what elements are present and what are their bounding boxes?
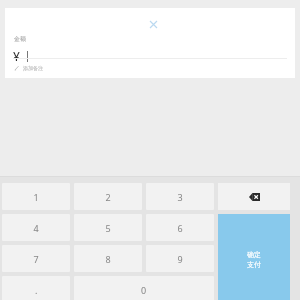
button[interactable]: 2 (74, 183, 142, 210)
staticText: 2 (105, 191, 111, 203)
staticText: 6 (177, 222, 183, 234)
button[interactable]: Backspace (218, 183, 290, 210)
button[interactable]: 3 (146, 183, 214, 210)
button[interactable]: 9 (146, 245, 214, 272)
button[interactable]: 1 (2, 183, 70, 210)
staticText: 7 (33, 253, 39, 265)
staticText: 5 (105, 222, 111, 234)
staticText: 8 (105, 253, 111, 265)
button[interactable]: 6 (146, 214, 214, 241)
staticText: 支付 (247, 260, 261, 269)
staticText: 金额 (14, 35, 26, 43)
staticText: 4 (33, 222, 39, 234)
staticText: 1 (33, 191, 39, 203)
button[interactable]: 8 (74, 245, 142, 272)
button[interactable]: 7 (2, 245, 70, 272)
staticText: 3 (177, 191, 183, 203)
staticText: 确定 (247, 250, 261, 259)
staticText: 0 (141, 284, 147, 296)
staticText: . (35, 284, 38, 296)
staticText: ¥ (13, 48, 20, 64)
button[interactable]: Close (146, 17, 160, 31)
staticText: 9 (177, 253, 183, 265)
button[interactable]: 4 (2, 214, 70, 241)
button[interactable]: 确定 (218, 214, 290, 300)
staticText: 添加备注 (23, 65, 43, 71)
button[interactable]: 添加备注 (11, 63, 46, 73)
button[interactable]: 5 (74, 214, 142, 241)
button[interactable]: 0 (74, 276, 214, 300)
